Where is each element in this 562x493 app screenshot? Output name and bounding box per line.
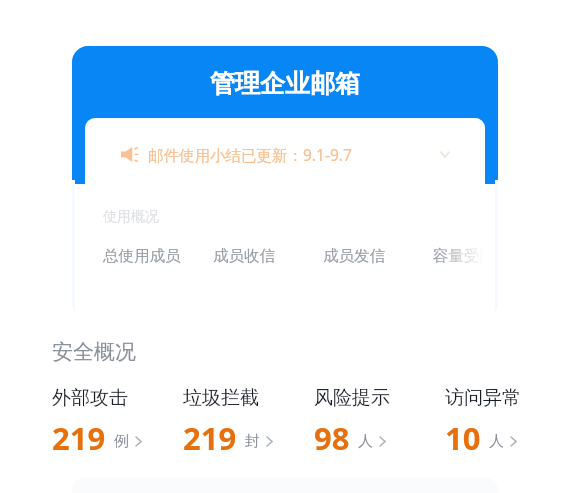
staticText: 容量受限 [433,246,485,266]
staticText: 使用概况 [103,208,159,226]
button[interactable]: 成员收信 [213,246,323,268]
staticText: 98 [314,417,350,459]
button[interactable]: 邮件使用小结已更新：9.1-9.7 [85,118,485,190]
staticText: 10 [445,417,481,459]
button[interactable]: 访问异常 [445,386,562,459]
button[interactable]: 总使用成员 [103,246,213,268]
staticText: 人 [489,432,504,451]
button[interactable]: 垃圾拦截 [183,386,314,459]
staticText: 访问异常 [445,386,521,410]
staticText: 例 [114,432,129,451]
button[interactable]: 风险提示 [314,386,445,459]
staticText: 管理企业邮箱 [210,68,360,99]
staticText: 风险提示 [314,386,390,410]
staticText: 外部攻击 [52,386,128,410]
staticText: 人 [358,432,373,451]
staticText: 219 [183,417,237,459]
staticText: 总使用成员 [103,246,181,266]
staticText: 成员收信 [213,246,275,266]
button[interactable]: Expand [434,143,456,165]
button[interactable]: 成员发信 [323,246,433,268]
staticText: 垃圾拦截 [183,386,259,410]
staticText: 安全概况 [52,339,136,365]
staticText: 成员发信 [323,246,385,266]
button[interactable]: 容量受限 [433,246,485,268]
button[interactable]: 外部攻击 [52,386,183,459]
staticText: 219 [52,417,106,459]
staticText: 邮件使用小结已更新：9.1-9.7 [148,144,352,165]
staticText: 封 [245,432,260,451]
